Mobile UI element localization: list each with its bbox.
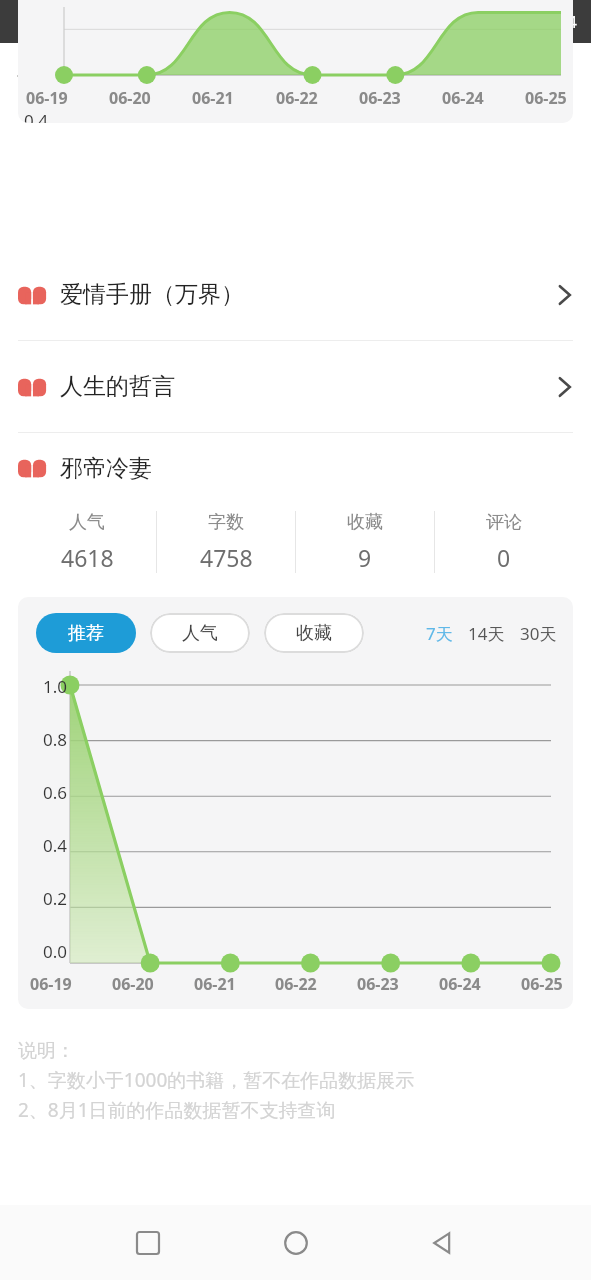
- button[interactable]: 邪帝冷妻: [0, 443, 591, 493]
- button[interactable]: Home: [266, 1213, 326, 1273]
- staticText: 评论: [486, 511, 522, 534]
- staticText: 06-22: [276, 87, 318, 109]
- staticText: 1.0: [43, 675, 68, 698]
- staticText: 7天: [426, 622, 453, 645]
- staticText: 06-20: [109, 87, 151, 109]
- button[interactable]: Back: [413, 1213, 473, 1273]
- button[interactable]: 推荐: [36, 613, 136, 653]
- staticText: 收藏: [296, 622, 332, 645]
- button[interactable]: Share: [531, 52, 579, 100]
- staticText: 收藏: [347, 511, 383, 534]
- button[interactable]: 爱情手册（万界）: [0, 249, 591, 340]
- staticText: 06-19: [30, 973, 72, 995]
- staticText: 06-21: [194, 973, 236, 995]
- staticText: 0.4: [24, 109, 49, 123]
- staticText: 作品数据: [252, 62, 340, 90]
- staticText: 06-19: [26, 87, 68, 109]
- staticText: 06-24: [442, 87, 484, 109]
- staticText: 0.8: [43, 728, 68, 751]
- staticText: 0.0: [43, 940, 68, 963]
- button[interactable]: 人生的哲言: [0, 341, 591, 432]
- staticText: 0.2: [43, 887, 68, 910]
- staticText: 06-23: [357, 973, 399, 995]
- staticText: 9: [358, 542, 372, 573]
- staticText: 30天: [520, 622, 557, 645]
- staticText: 字数: [208, 511, 244, 534]
- button[interactable]: 人气: [150, 613, 250, 653]
- staticText: 4618: [61, 542, 114, 573]
- button[interactable]: 收藏: [264, 613, 364, 653]
- staticText: 邪帝冷妻: [60, 454, 152, 483]
- staticText: 06-25: [525, 87, 567, 109]
- button[interactable]: Back: [6, 50, 58, 102]
- staticText: 2、8月1日前的作品数据暂不支持查询: [18, 1097, 336, 1123]
- staticText: 4758: [200, 542, 253, 573]
- staticText: 10:24: [536, 11, 577, 33]
- staticText: 0.6: [43, 781, 68, 804]
- staticText: 0: [497, 542, 511, 573]
- button[interactable]: Recents: [118, 1213, 178, 1273]
- button[interactable]: 7天: [424, 622, 455, 645]
- staticText: 人气: [69, 511, 105, 534]
- staticText: 说明：: [18, 1039, 75, 1063]
- staticText: 06-24: [439, 973, 481, 995]
- staticText: 14天: [468, 622, 505, 645]
- staticText: 06-21: [192, 87, 234, 109]
- staticText: 推荐: [68, 622, 104, 645]
- staticText: 1、字数小于1000的书籍，暂不在作品数据展示: [18, 1067, 415, 1093]
- button[interactable]: 14天: [466, 622, 507, 645]
- staticText: 人生的哲言: [60, 372, 175, 401]
- button[interactable]: Download: [483, 52, 531, 100]
- staticText: 06-23: [359, 87, 401, 109]
- staticText: 爱情手册（万界）: [60, 280, 244, 309]
- staticText: 0.4: [43, 834, 68, 857]
- staticText: 人气: [182, 622, 218, 645]
- staticText: 06-20: [112, 973, 154, 995]
- button[interactable]: 30天: [518, 622, 559, 645]
- staticText: 06-25: [521, 973, 563, 995]
- staticText: 06-22: [275, 973, 317, 995]
